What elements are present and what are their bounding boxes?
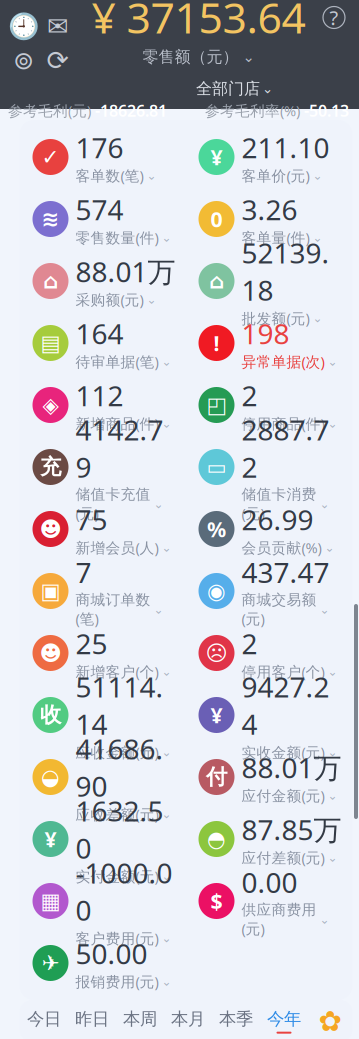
staticText: 参考毛利率(%): [205, 101, 300, 120]
staticText: 全部门店: [196, 79, 260, 98]
staticText: 应付金额(元): [241, 786, 324, 805]
button[interactable]: 今年: [260, 1001, 308, 1039]
staticText: ▤: [40, 331, 60, 355]
staticText: ⌄: [146, 169, 156, 182]
button[interactable]: ▣: [19, 560, 185, 622]
staticText: 2: [241, 625, 257, 662]
staticText: ✈: [41, 951, 59, 975]
staticText: ≋: [41, 207, 59, 231]
staticText: ⌄: [327, 355, 337, 368]
button[interactable]: 同步: [7, 45, 40, 75]
staticText: ⌂: [43, 269, 58, 293]
button[interactable]: ¥: [19, 808, 185, 870]
button[interactable]: ✓: [19, 126, 185, 188]
staticText: 新增客户(个): [75, 662, 158, 681]
staticText: 2: [241, 377, 257, 414]
button[interactable]: 收: [19, 684, 185, 746]
staticText: ¥ 37153.64: [91, 0, 305, 45]
staticText: ▭: [206, 455, 226, 479]
button[interactable]: 充: [19, 436, 185, 498]
staticText: ◈: [42, 393, 58, 417]
staticText: 51114.14: [75, 668, 163, 742]
staticText: 87.85万: [241, 811, 341, 848]
button[interactable]: ◓: [185, 808, 351, 870]
staticText: 52139.18: [241, 234, 329, 308]
button[interactable]: ▦: [19, 870, 185, 932]
button[interactable]: ¥: [185, 684, 351, 746]
staticText: 实收金额(元): [241, 742, 324, 762]
staticText: 437.47: [241, 554, 329, 591]
staticText: ⌄: [161, 417, 171, 430]
staticText: 88.01万: [241, 749, 341, 786]
staticText: 商城订单数(笔): [75, 591, 150, 628]
staticText: 付: [206, 764, 227, 790]
staticText: 新增商品(件): [75, 414, 158, 433]
staticText: ⌄: [161, 355, 171, 368]
button[interactable]: ☻: [19, 622, 185, 684]
staticText: 零售额（元）: [142, 47, 238, 67]
staticText: ◰: [206, 393, 226, 417]
staticText: 9427.24: [241, 668, 329, 742]
staticText: 批发额(元): [241, 308, 309, 328]
button[interactable]: 昨日: [68, 1001, 116, 1039]
button[interactable]: ◉: [185, 560, 351, 622]
button[interactable]: ✈: [19, 932, 185, 994]
staticText: 41686.90: [75, 730, 163, 804]
button[interactable]: 帮助: [323, 6, 345, 28]
staticText: ⌄: [319, 497, 329, 511]
button[interactable]: 历史记录: [7, 11, 40, 41]
staticText: ⌄: [327, 745, 337, 759]
button[interactable]: 0: [185, 188, 351, 250]
button[interactable]: ◈: [19, 374, 185, 436]
button[interactable]: %: [185, 498, 351, 560]
staticText: ?: [329, 4, 338, 31]
staticText: 7: [75, 554, 91, 591]
staticText: 112: [75, 377, 123, 414]
button[interactable]: ¥: [185, 126, 351, 188]
button[interactable]: ◰: [185, 374, 351, 436]
button[interactable]: ≋: [19, 188, 185, 250]
staticText: ⌂: [209, 269, 224, 293]
button[interactable]: 本季: [212, 1001, 260, 1039]
staticText: 客单数(笔): [75, 166, 143, 185]
button[interactable]: ⌂: [185, 250, 351, 312]
button[interactable]: 消息: [41, 11, 74, 41]
button[interactable]: ☻: [19, 498, 185, 560]
staticText: 待审单据(笔): [75, 352, 158, 371]
staticText: 储值卡充值(元): [75, 485, 150, 523]
staticText: ⌄: [146, 293, 156, 306]
button[interactable]: 付: [185, 746, 351, 808]
staticText: ⌄: [327, 417, 337, 430]
button[interactable]: 本周: [116, 1001, 164, 1039]
staticText: ☻: [39, 641, 61, 665]
staticText: ◒: [41, 765, 60, 789]
staticText: 报销费用(元): [75, 972, 158, 991]
button[interactable]: !: [185, 312, 351, 374]
button[interactable]: ☹: [185, 622, 351, 684]
button[interactable]: ⌂: [19, 250, 185, 312]
staticText: -50.13: [300, 100, 349, 121]
staticText: ▣: [40, 579, 60, 603]
button[interactable]: 设置: [308, 1001, 352, 1039]
button[interactable]: $: [185, 870, 351, 932]
button[interactable]: 今日: [20, 1001, 68, 1039]
button[interactable]: 刷新: [41, 45, 74, 75]
staticText: 176: [75, 129, 123, 166]
staticText: 应收金额(元): [75, 742, 158, 762]
staticText: $: [210, 887, 222, 915]
button[interactable]: 零售额（元）: [142, 47, 254, 67]
staticText: 25: [75, 625, 107, 662]
staticText: 本季: [219, 1008, 253, 1030]
button[interactable]: 全部门店: [124, 79, 273, 98]
button[interactable]: ◒: [19, 746, 185, 808]
staticText: 50.00: [75, 935, 147, 972]
button[interactable]: ▤: [19, 312, 185, 374]
staticText: 今日: [27, 1008, 61, 1030]
button[interactable]: ▭: [185, 436, 351, 498]
staticText: 0: [210, 205, 222, 233]
staticText: 1632.50: [75, 792, 163, 866]
staticText: 收: [40, 702, 61, 728]
button[interactable]: 本月: [164, 1001, 212, 1039]
staticText: 本月: [171, 1008, 205, 1030]
staticText: ⌄: [242, 49, 254, 65]
